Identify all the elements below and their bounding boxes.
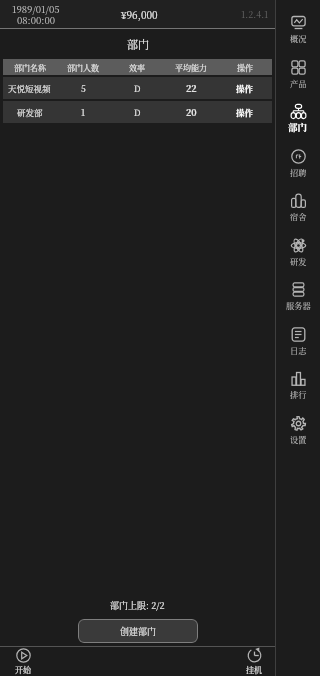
staticText: 部门上限: 2/2 [110, 599, 165, 612]
staticText: 5 [81, 82, 86, 94]
staticText: ¥96,000 [121, 7, 158, 21]
staticText: 部门 [127, 36, 149, 52]
button[interactable]: 宿舍 [276, 193, 320, 233]
staticText: 部门 [288, 120, 308, 134]
staticText: 研发 [290, 256, 307, 268]
button[interactable]: 操作 [218, 101, 272, 123]
other: Start [16, 648, 31, 663]
staticText: 1989/01/05 [12, 2, 60, 16]
button[interactable]: 日志 [276, 327, 320, 367]
staticText: 创建部门 [120, 625, 157, 638]
other: 设置 [291, 416, 306, 431]
button[interactable]: 创建部门 [78, 619, 198, 643]
other: 研发 [291, 238, 306, 253]
other: 招聘 [291, 149, 306, 164]
staticText: 设置 [290, 434, 307, 446]
staticText: 22 [186, 82, 197, 95]
staticText: 排行 [290, 389, 307, 401]
button[interactable]: 研发部 [3, 101, 272, 123]
button[interactable]: 服务器 [276, 282, 320, 322]
staticText: 服务器 [286, 300, 311, 312]
staticText: 开始 [15, 664, 31, 675]
staticText: 概况 [290, 33, 307, 45]
other: 宿舍 [291, 193, 306, 208]
other: Idle [247, 648, 262, 663]
button[interactable]: 概况 [276, 15, 320, 55]
other: 日志 [291, 327, 306, 342]
staticText: 部门名称 [14, 62, 46, 73]
button[interactable]: 天悦短视频 [3, 77, 272, 99]
staticText: 08:00:00 [17, 13, 55, 27]
staticText: 平均能力 [175, 62, 207, 73]
other: 排行 [291, 371, 306, 386]
staticText: D [134, 106, 141, 118]
button[interactable]: 产品 [276, 60, 320, 100]
button[interactable]: 操作 [218, 77, 272, 99]
staticText: D [134, 82, 141, 94]
button[interactable]: 设置 [276, 416, 320, 456]
other: 部门 [291, 104, 306, 119]
staticText: 日志 [290, 345, 307, 357]
staticText: 操作 [236, 82, 254, 94]
staticText: 天悦短视频 [8, 82, 51, 94]
staticText: 研发部 [17, 106, 43, 118]
staticText: 操作 [237, 62, 253, 73]
button[interactable]: Start [5, 648, 41, 675]
other: 服务器 [291, 282, 306, 297]
staticText: 产品 [290, 78, 307, 90]
button[interactable]: 研发 [276, 238, 320, 278]
staticText: 部门人数 [67, 62, 99, 73]
staticText: 1.2.4.1 [241, 8, 269, 21]
button[interactable]: 排行 [276, 371, 320, 411]
staticText: 1 [81, 106, 86, 118]
staticText: 操作 [236, 106, 254, 118]
staticText: 招聘 [290, 167, 307, 179]
other: 概况 [291, 15, 306, 30]
staticText: 效率 [129, 62, 145, 73]
other: 产品 [291, 60, 306, 75]
button[interactable]: 招聘 [276, 149, 320, 189]
staticText: 挂机 [246, 664, 262, 675]
button[interactable]: Idle [236, 648, 272, 675]
staticText: 20 [186, 106, 197, 119]
button[interactable]: 部门 [276, 104, 320, 144]
staticText: 宿舍 [290, 211, 307, 223]
